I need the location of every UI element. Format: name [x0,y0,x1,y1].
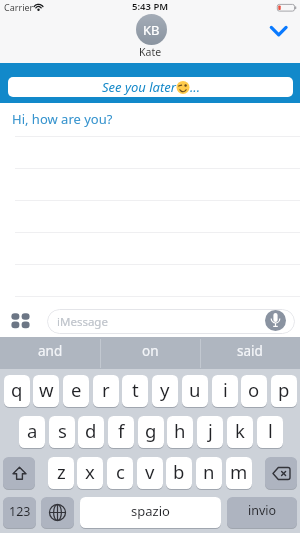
button[interactable]: 123 [3,497,36,528]
staticText: l [268,418,273,443]
button[interactable] [8,310,33,331]
button[interactable]: t [122,375,148,407]
staticText: k [235,418,245,443]
staticText: spazio [131,502,170,520]
staticText: g [145,418,157,443]
button[interactable]: u [182,375,208,407]
staticText: j [208,418,213,443]
button[interactable]: spazio [80,497,221,528]
button[interactable]: w [33,375,59,407]
staticText: h [174,418,186,443]
staticText: d [85,418,97,443]
button[interactable]: o [241,375,267,407]
staticText: Carrier [4,1,34,13]
button[interactable]: h [167,416,193,448]
button[interactable]: m [226,457,252,489]
button[interactable]: g [138,416,164,448]
staticText: iMessage [57,314,108,330]
button[interactable] [0,63,300,103]
staticText: o [248,377,260,402]
button[interactable] [41,497,74,528]
button[interactable]: iMessage [47,309,295,334]
button[interactable]: s [49,416,75,448]
button[interactable]: q [4,375,30,407]
button[interactable]: See you later [8,77,293,97]
staticText: z [57,459,66,484]
button[interactable]: j [197,416,223,448]
button[interactable]: p [271,375,297,407]
staticText: Kate [139,45,162,59]
staticText: q [11,377,23,402]
staticText: b [173,459,185,484]
button[interactable]: x [77,457,103,489]
button[interactable] [265,457,297,489]
button[interactable]: r [93,375,119,407]
staticText: p [278,377,290,402]
button[interactable]: z [48,457,74,489]
staticText: r [102,377,110,402]
button[interactable]: and [0,337,100,369]
staticText: m [230,459,248,484]
staticText: s [58,418,67,443]
staticText: f [118,418,125,443]
staticText: y [160,377,170,402]
staticText: i [223,377,228,402]
staticText: n [203,459,215,484]
staticText: See you later [102,78,176,96]
staticText: w [39,377,54,402]
button[interactable]: l [257,416,283,448]
button[interactable]: c [107,457,133,489]
button[interactable]: y [152,375,178,407]
staticText: KB [143,21,160,39]
button[interactable]: n [196,457,222,489]
button[interactable]: invio [227,497,297,528]
staticText: said [237,342,263,360]
button[interactable]: a [19,416,45,448]
button[interactable]: e [63,375,89,407]
staticText: invio [248,502,277,519]
staticText: a [27,418,38,443]
staticText: ... [190,78,200,96]
staticText: t [132,377,139,402]
button[interactable]: d [78,416,104,448]
button[interactable]: v [137,457,163,489]
button[interactable] [3,457,35,489]
staticText: e [71,377,82,402]
button[interactable]: f [108,416,134,448]
staticText: u [189,377,201,402]
button[interactable]: b [166,457,192,489]
staticText: on [142,342,159,360]
button[interactable]: i [212,375,238,407]
button[interactable]: said [200,337,300,369]
staticText: and [38,342,63,360]
button[interactable]: k [227,416,253,448]
staticText: Hi, how are you? [12,110,113,128]
staticText: x [85,459,95,484]
staticText: 123 [9,503,31,520]
button[interactable] [264,20,293,46]
button[interactable]: on [100,337,200,369]
staticText: v [145,459,155,484]
staticText: c [116,459,125,484]
staticText: 5:43 PM [132,0,169,13]
